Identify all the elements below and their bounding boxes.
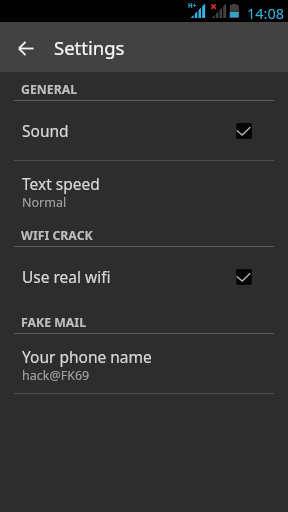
button[interactable]: Sound: [0, 101, 288, 160]
staticText: GENERAL: [21, 81, 78, 98]
button[interactable]: Your phone name: [0, 334, 288, 393]
staticText: Sound: [22, 120, 69, 141]
staticText: WIFI CRACK: [21, 227, 93, 244]
staticText: Settings: [54, 35, 125, 60]
staticText: H+: [188, 1, 197, 9]
button[interactable]: Back: [0, 22, 50, 72]
staticText: Your phone name: [22, 346, 152, 367]
staticText: Text speed: [22, 173, 100, 194]
staticText: 14:08: [247, 3, 285, 23]
staticText: Normal: [22, 194, 67, 211]
staticText: Use real wifi: [22, 266, 111, 287]
staticText: hack@FK69: [22, 367, 90, 384]
button[interactable]: Text speed: [0, 161, 288, 220]
staticText: FAKE MAIL: [21, 314, 87, 331]
button[interactable]: Use real wifi: [0, 247, 288, 306]
